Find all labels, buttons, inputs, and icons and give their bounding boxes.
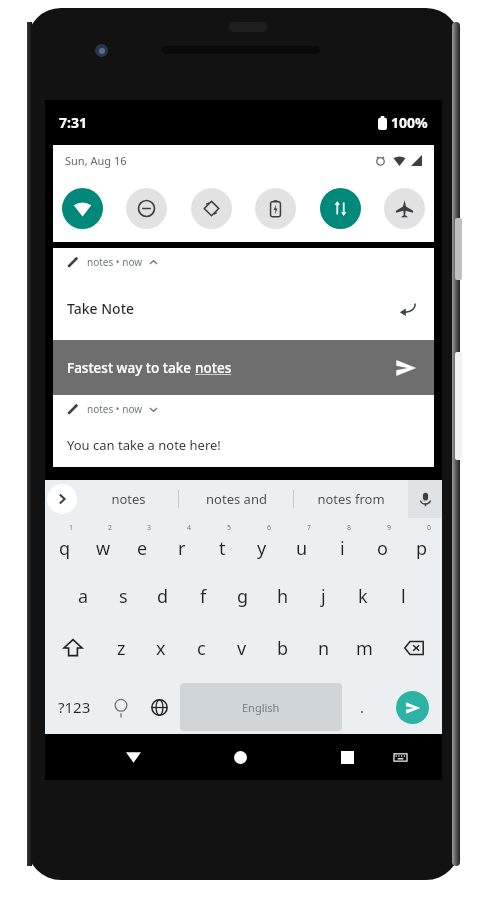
staticText: 2 (108, 523, 113, 533)
button[interactable]: k (343, 570, 383, 622)
staticText: q (59, 536, 71, 561)
button[interactable]: d (143, 570, 183, 622)
button[interactable]: Toggle off (191, 188, 232, 229)
staticText: Fastest way to take (67, 359, 195, 377)
button[interactable]: 7 (282, 518, 322, 570)
staticText: e (137, 536, 148, 561)
staticText: i (340, 536, 345, 561)
staticText: d (157, 584, 169, 609)
button[interactable]: . (342, 674, 383, 740)
button[interactable]: c (181, 622, 221, 674)
staticText: Take Note (67, 299, 135, 318)
button[interactable]: s (103, 570, 143, 622)
button[interactable]: b (262, 622, 303, 674)
staticText: You can take a note here! (67, 436, 221, 454)
button[interactable]: notes and (179, 480, 293, 518)
staticText: m (356, 636, 373, 661)
staticText: notes and (206, 490, 267, 508)
staticText: j (321, 584, 326, 609)
staticText: 9 (387, 523, 392, 533)
button[interactable]: h (263, 570, 303, 622)
button[interactable]: Home (223, 740, 257, 774)
staticText: s (119, 584, 128, 609)
button[interactable]: 2 (84, 518, 123, 570)
button[interactable]: 4 (162, 518, 202, 570)
button[interactable]: n (303, 622, 344, 674)
button[interactable]: f (183, 570, 223, 622)
staticText: 7 (307, 523, 312, 533)
button[interactable]: Toggle off (384, 188, 425, 229)
staticText: g (237, 584, 249, 609)
staticText: a (78, 584, 89, 609)
button[interactable]: j (303, 570, 343, 622)
button[interactable]: Toggle off (255, 188, 296, 229)
staticText: k (358, 584, 368, 609)
button[interactable]: English (180, 683, 342, 731)
button[interactable]: 6 (242, 518, 282, 570)
staticText: t (219, 536, 226, 561)
button[interactable]: notes • now (53, 248, 434, 340)
staticText: notes from (317, 490, 385, 508)
staticText: . (360, 697, 365, 717)
button[interactable]: l (383, 570, 423, 622)
button[interactable]: x (141, 622, 181, 674)
staticText: 3 (147, 523, 152, 533)
button[interactable]: More suggestions (47, 484, 77, 514)
button[interactable]: notes from (294, 480, 408, 518)
staticText: notes • now (87, 255, 143, 269)
button[interactable]: Backspace (385, 622, 442, 674)
button[interactable]: m (344, 622, 385, 674)
button[interactable]: Toggle on (62, 188, 103, 229)
staticText: w (96, 536, 111, 561)
staticText: n (318, 636, 330, 661)
button[interactable]: notes • now (53, 395, 434, 467)
staticText: f (200, 584, 207, 609)
staticText: u (296, 536, 308, 561)
button[interactable]: 9 (362, 518, 402, 570)
button[interactable]: Toggle on (320, 188, 361, 229)
staticText: 100% (391, 113, 428, 132)
staticText: c (197, 636, 206, 661)
staticText: h (277, 584, 289, 609)
button[interactable]: Voice input (408, 480, 442, 518)
button[interactable]: z (101, 622, 141, 674)
staticText: y (257, 536, 267, 561)
button[interactable]: Emoji (103, 674, 139, 740)
staticText: b (277, 636, 289, 661)
button[interactable]: Hide keyboard (385, 742, 415, 772)
button[interactable]: ?123 (45, 674, 103, 740)
button[interactable]: Change language (139, 674, 180, 740)
staticText: ?123 (58, 697, 91, 717)
staticText: p (416, 536, 428, 561)
staticText: l (401, 584, 406, 609)
staticText: 8 (347, 523, 352, 533)
button[interactable]: g (223, 570, 263, 622)
button[interactable]: 1 (45, 518, 84, 570)
button[interactable]: v (221, 622, 262, 674)
button[interactable]: Send (392, 354, 420, 382)
staticText: English (242, 700, 280, 715)
button[interactable]: 5 (202, 518, 242, 570)
staticText: Sun, Aug 16 (65, 153, 127, 168)
button[interactable]: Send (383, 674, 442, 740)
staticText: 1 (69, 523, 74, 533)
button[interactable]: a (64, 570, 103, 622)
staticText: 6 (267, 523, 272, 533)
staticText: notes • now (87, 402, 143, 416)
button[interactable]: Fastest way to take (67, 340, 420, 395)
staticText: 4 (187, 523, 192, 533)
button[interactable]: notes (79, 480, 178, 518)
button[interactable]: Reply (394, 295, 420, 321)
button[interactable]: 0 (402, 518, 442, 570)
button[interactable]: Toggle off (126, 188, 167, 229)
button[interactable]: 8 (322, 518, 362, 570)
button[interactable]: Recents (330, 740, 364, 774)
button[interactable]: Shift (45, 622, 101, 674)
staticText: v (237, 636, 247, 661)
staticText: 0 (427, 523, 432, 533)
staticText: o (377, 536, 388, 561)
staticText: notes (111, 490, 146, 508)
staticText: r (178, 536, 186, 561)
button[interactable]: 3 (123, 518, 162, 570)
button[interactable]: Back (116, 740, 150, 774)
